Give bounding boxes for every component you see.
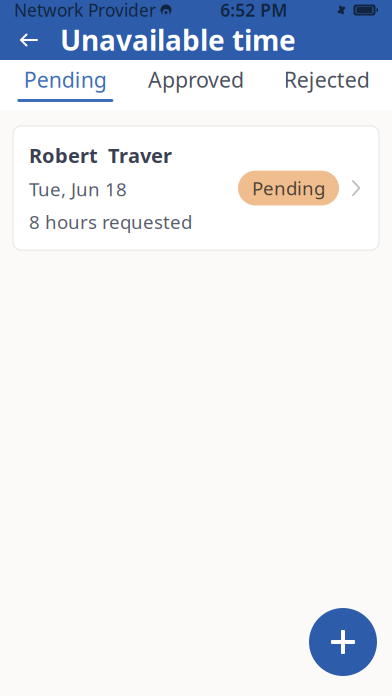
button[interactable]: Robert Traver	[13, 126, 379, 250]
staticText: Robert Traver	[29, 142, 172, 169]
button[interactable]: Approved	[131, 60, 261, 110]
staticText: Rejected	[284, 65, 370, 94]
staticText: Approved	[148, 65, 244, 94]
staticText: 8 hours requested	[29, 209, 192, 234]
staticText: Unavailable time	[60, 21, 296, 59]
staticText: Tue, Jun 18	[29, 177, 127, 201]
button[interactable]: Pending	[0, 60, 131, 110]
button[interactable]: Rejected	[261, 60, 392, 110]
staticText: 6:52 PM	[220, 0, 287, 21]
staticText: Pending	[252, 176, 325, 200]
button[interactable]: Add unavailable time	[309, 608, 377, 676]
button[interactable]: Back	[12, 20, 46, 60]
staticText: Pending	[24, 65, 107, 94]
staticText: Network Provider	[14, 0, 156, 21]
